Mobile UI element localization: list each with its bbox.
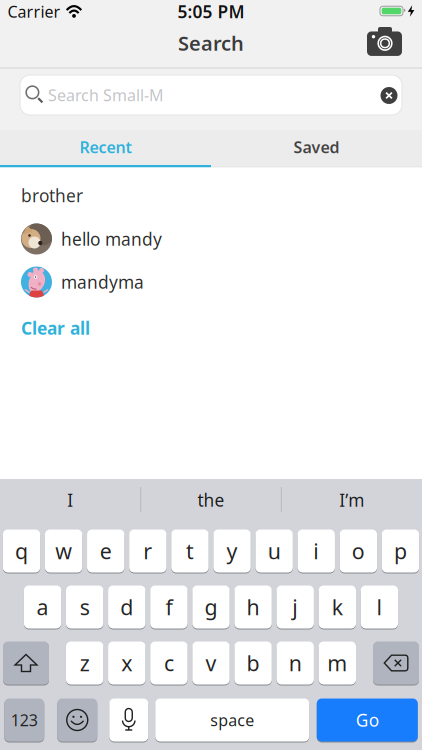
staticText: 5:05 PM — [177, 0, 244, 23]
staticText: j — [292, 593, 298, 621]
button[interactable]: Go — [317, 698, 418, 742]
button[interactable]: c — [150, 641, 188, 685]
button[interactable]: g — [192, 585, 230, 629]
button[interactable]: b — [234, 641, 272, 685]
staticText: u — [268, 537, 281, 565]
staticText: Saved — [293, 136, 339, 158]
button[interactable]: j — [276, 585, 314, 629]
button[interactable]: d — [108, 585, 145, 629]
button[interactable]: the — [142, 478, 280, 522]
button[interactable]: hello mandy — [21, 218, 422, 260]
staticText: x — [121, 649, 132, 677]
staticText: n — [289, 649, 302, 677]
staticText: k — [332, 593, 343, 621]
button[interactable]: k — [319, 585, 356, 629]
staticText: hello mandy — [61, 227, 162, 250]
staticText: 123 — [11, 709, 38, 731]
staticText: Go — [356, 708, 379, 731]
button[interactable]: Recent — [0, 128, 211, 166]
staticText: h — [247, 593, 260, 621]
staticText: w — [55, 537, 72, 565]
staticText: I’m — [339, 488, 364, 511]
staticText: brother — [21, 184, 83, 207]
button[interactable]: u — [255, 529, 293, 573]
button[interactable]: Clear all — [21, 313, 422, 343]
staticText: Clear all — [21, 316, 90, 339]
button[interactable]: o — [340, 529, 377, 573]
button[interactable]: Camera — [362, 26, 406, 60]
button[interactable]: I’m — [283, 478, 421, 522]
button[interactable]: w — [45, 529, 82, 573]
button[interactable]: p — [382, 529, 419, 573]
button[interactable]: space — [155, 698, 309, 742]
staticText: Search — [178, 30, 244, 56]
staticText: a — [37, 593, 49, 621]
button[interactable]: e — [87, 529, 124, 573]
staticText: t — [186, 537, 194, 565]
button[interactable]: h — [234, 585, 272, 629]
button[interactable]: a — [24, 585, 61, 629]
button[interactable]: m — [319, 641, 356, 685]
button[interactable]: Delete — [373, 641, 419, 685]
button[interactable]: q — [3, 529, 40, 573]
staticText: i — [313, 537, 319, 565]
staticText: s — [80, 593, 90, 621]
button[interactable]: r — [129, 529, 167, 573]
staticText: q — [15, 537, 28, 565]
button[interactable]: f — [150, 585, 188, 629]
button[interactable]: Search Small-M — [20, 75, 402, 115]
button[interactable]: l — [361, 585, 398, 629]
staticText: e — [100, 537, 112, 565]
staticText: c — [164, 649, 174, 677]
staticText: mandyma — [61, 270, 144, 293]
staticText: space — [210, 709, 254, 731]
staticText: y — [227, 537, 238, 565]
button[interactable]: Shift — [3, 641, 49, 685]
button[interactable]: y — [213, 529, 251, 573]
button[interactable]: Saved — [211, 128, 422, 166]
staticText: l — [376, 593, 382, 621]
button[interactable]: mandyma — [21, 261, 422, 303]
staticText: b — [247, 649, 260, 677]
button[interactable]: I — [1, 478, 139, 522]
button[interactable]: i — [298, 529, 335, 573]
staticText: m — [327, 649, 347, 677]
staticText: p — [394, 537, 407, 565]
staticText: g — [204, 593, 217, 621]
button[interactable]: Dictate — [109, 698, 148, 742]
staticText: d — [120, 593, 133, 621]
staticText: v — [205, 649, 216, 677]
button[interactable]: t — [171, 529, 209, 573]
button[interactable]: 123 — [4, 698, 44, 742]
button[interactable]: v — [192, 641, 230, 685]
button[interactable]: x — [108, 641, 145, 685]
button[interactable]: Emoji — [57, 698, 97, 742]
button[interactable]: n — [276, 641, 314, 685]
staticText: Recent — [79, 136, 131, 158]
staticText: f — [165, 593, 172, 621]
staticText: r — [143, 537, 152, 565]
staticText: Carrier — [7, 1, 60, 22]
staticText: I — [67, 488, 73, 511]
staticText: the — [197, 488, 224, 511]
button[interactable]: s — [66, 585, 103, 629]
staticText: o — [352, 537, 365, 565]
button[interactable]: z — [66, 641, 103, 685]
staticText: z — [80, 649, 90, 677]
staticText: Search Small-M — [48, 84, 164, 106]
button[interactable]: Clear search — [380, 87, 397, 104]
